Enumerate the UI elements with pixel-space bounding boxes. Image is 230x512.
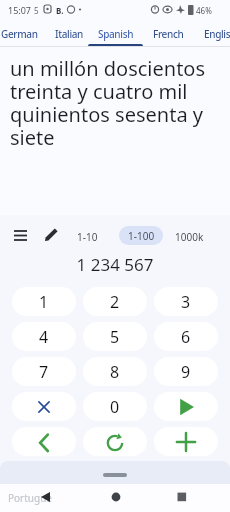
staticText: 9 [181,361,191,383]
staticText: 3 [181,291,191,313]
button[interactable] [154,392,218,421]
button[interactable]: 9 [154,357,218,386]
button[interactable] [44,225,66,247]
button[interactable] [83,427,147,456]
button[interactable]: French [153,27,184,41]
button[interactable]: 3 [154,287,218,316]
button[interactable]: German [1,27,38,41]
button[interactable] [12,392,76,421]
button[interactable]: English [204,27,230,41]
staticText: 8 [110,361,120,383]
button[interactable]: 1-10 [77,230,98,244]
staticText: 7 [39,361,49,383]
button[interactable]: 7 [12,357,76,386]
button[interactable]: Italian [55,27,84,41]
staticText: 4 [39,326,49,348]
button[interactable]: 1-100 [119,226,163,245]
button[interactable]: Spanish [98,27,134,41]
button[interactable]: 0 [83,392,147,421]
staticText: 6 [181,326,191,348]
staticText: un millón doscientos treinta y cuatro mi… [10,55,206,151]
staticText: 1-100 [128,229,155,243]
button[interactable] [14,225,36,247]
staticText: 1 [39,291,49,313]
staticText: 46% [196,5,212,16]
staticText: 5 [110,326,120,348]
staticText: 5 [34,5,39,16]
button[interactable]: 2 [83,287,147,316]
staticText: 15:07 [8,4,32,16]
staticText: 2 [110,291,120,313]
staticText: 0 [110,396,120,418]
button[interactable]: 1000k [175,230,204,244]
button[interactable]: 4 [12,322,76,351]
staticText: Portugue [8,491,52,505]
button[interactable]: 5 [83,322,147,351]
button[interactable] [0,484,230,512]
button[interactable]: 1 [12,287,76,316]
button[interactable] [12,427,76,456]
button[interactable]: 8 [83,357,147,386]
staticText: B. [56,5,64,16]
button[interactable]: 6 [154,322,218,351]
button[interactable] [154,427,218,456]
staticText: 1 234 567 [0,253,230,276]
